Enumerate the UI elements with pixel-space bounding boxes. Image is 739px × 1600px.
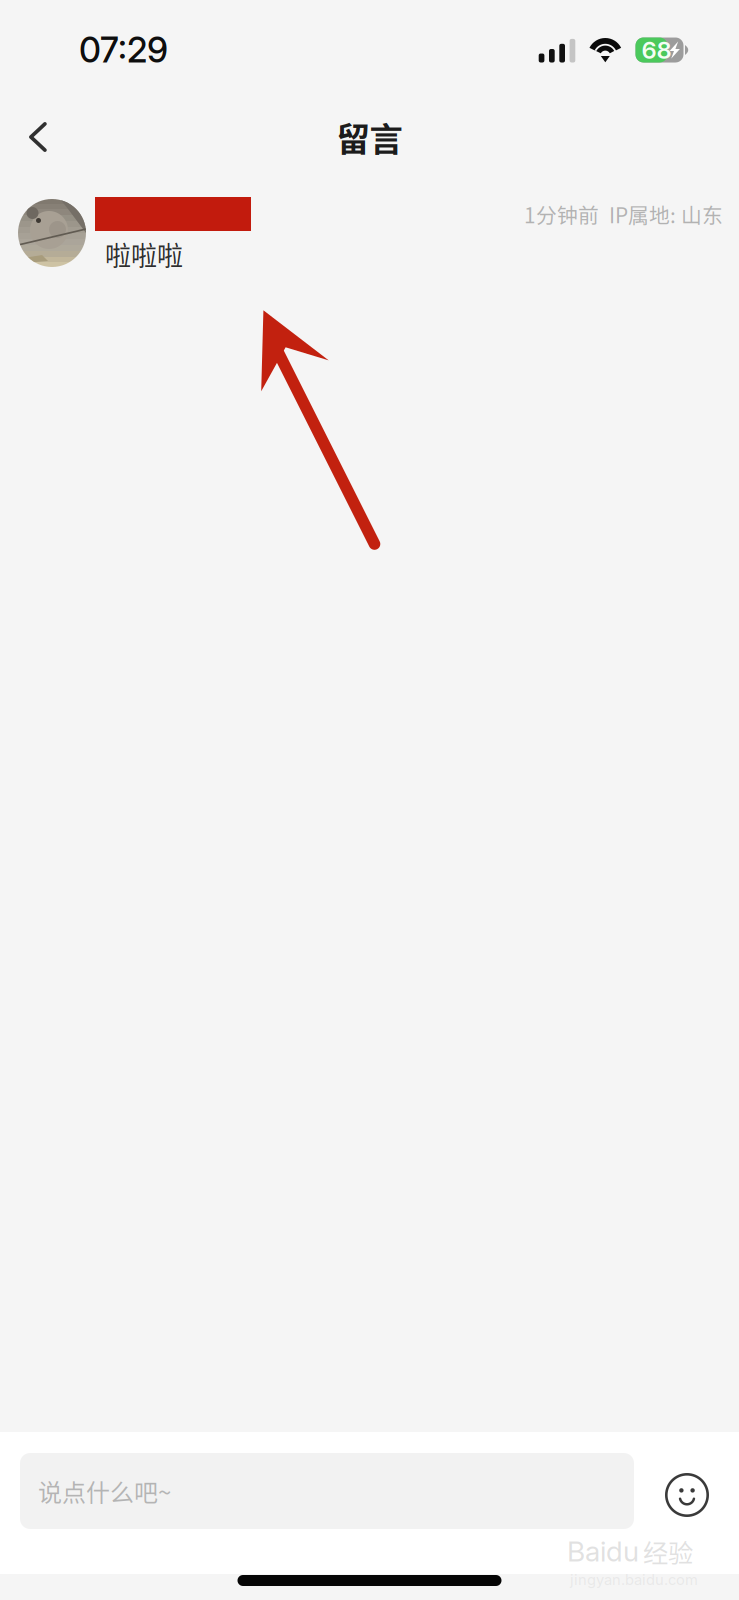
button[interactable]: Back	[0, 104, 71, 170]
button[interactable]: User profile	[0, 197, 86, 267]
staticText: 说点什么吧~	[38, 1474, 171, 1508]
staticText: 68	[641, 35, 671, 64]
button[interactable]: 说点什么吧~	[20, 1453, 634, 1529]
staticText: 经验	[643, 1533, 693, 1570]
staticText: 07:29	[79, 29, 168, 71]
staticText: jingyan.baidu.com	[570, 1571, 698, 1588]
staticText: 1分钟前 IP属地: 山东	[524, 199, 723, 229]
staticText: 啦啦啦	[105, 235, 183, 273]
staticText: 留言	[336, 113, 402, 161]
staticText: Baidu	[567, 1534, 639, 1568]
button[interactable]: Emoji	[654, 1453, 720, 1529]
